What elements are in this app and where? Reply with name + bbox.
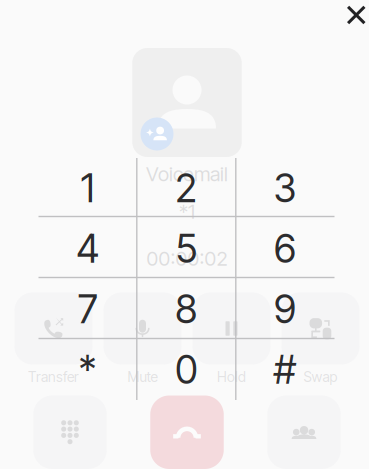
button[interactable]: Keypad bbox=[33, 395, 107, 469]
button[interactable]: 5 bbox=[137, 218, 235, 279]
staticText: Hold bbox=[217, 368, 246, 385]
button[interactable]: 0 bbox=[137, 339, 235, 400]
staticText: 9 bbox=[274, 286, 296, 333]
staticText: Voicemail bbox=[146, 162, 228, 186]
staticText: 7 bbox=[78, 286, 98, 333]
staticText: 5 bbox=[176, 225, 197, 272]
button[interactable]: Mute bbox=[103, 292, 181, 384]
staticText: 4 bbox=[76, 225, 99, 272]
staticText: * bbox=[79, 346, 97, 393]
staticText: 8 bbox=[175, 286, 197, 333]
button[interactable]: 9 bbox=[235, 279, 334, 339]
button[interactable]: 2 bbox=[137, 158, 235, 218]
button[interactable]: Swap bbox=[281, 292, 359, 384]
button[interactable]: * bbox=[38, 339, 137, 400]
staticText: 1 bbox=[81, 165, 95, 212]
button[interactable]: Transfer bbox=[14, 292, 92, 384]
staticText: Mute bbox=[127, 368, 157, 385]
staticText: 00:00:02 bbox=[146, 246, 227, 271]
staticText: # bbox=[273, 346, 296, 393]
button[interactable]: 8 bbox=[137, 279, 235, 339]
button[interactable]: 4 bbox=[38, 218, 137, 279]
button[interactable]: Close bbox=[341, 0, 369, 30]
button[interactable]: 1 bbox=[38, 158, 137, 218]
button[interactable]: Hold bbox=[192, 292, 270, 384]
staticText: *1 bbox=[179, 199, 195, 224]
button[interactable]: End call bbox=[150, 395, 224, 469]
staticText: Swap bbox=[303, 368, 337, 385]
staticText: 3 bbox=[273, 165, 296, 212]
button[interactable]: Add contact bbox=[267, 395, 341, 469]
button[interactable]: 6 bbox=[235, 218, 334, 279]
staticText: 0 bbox=[175, 346, 197, 393]
staticText: Transfer bbox=[28, 368, 79, 385]
staticText: 6 bbox=[274, 225, 296, 272]
button[interactable]: 7 bbox=[38, 279, 137, 339]
button[interactable]: # bbox=[235, 339, 334, 400]
staticText: 2 bbox=[175, 165, 197, 212]
button[interactable]: 3 bbox=[235, 158, 334, 218]
